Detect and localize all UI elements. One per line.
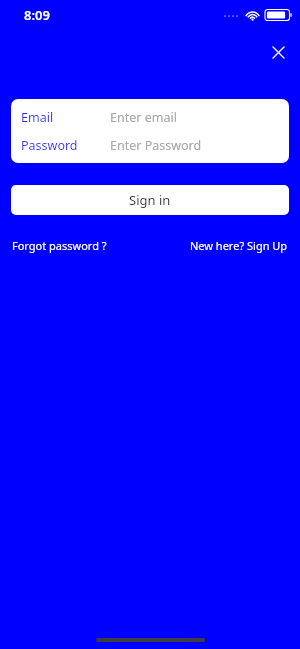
button[interactable]: Sign in bbox=[11, 185, 289, 215]
button[interactable]: Password bbox=[11, 137, 289, 154]
staticText: 8:09 bbox=[24, 6, 50, 24]
staticText: Forgot password ? bbox=[12, 238, 107, 253]
button[interactable]: Forgot password ? bbox=[11, 236, 108, 255]
staticText: Password bbox=[21, 137, 78, 154]
staticText: Enter email bbox=[110, 109, 177, 126]
button[interactable]: New here? Sign Up bbox=[189, 236, 289, 255]
staticText: New here? Sign Up bbox=[190, 238, 288, 253]
staticText: Sign in bbox=[129, 191, 171, 209]
staticText: Email bbox=[21, 109, 54, 126]
button[interactable]: Close bbox=[265, 39, 292, 66]
button[interactable]: Email bbox=[11, 109, 289, 126]
staticText: Enter Password bbox=[110, 137, 202, 154]
